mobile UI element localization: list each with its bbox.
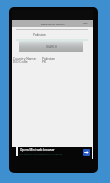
- button[interactable]: SEARCH: [19, 41, 83, 52]
- staticText: The fastest Mini browser for Android: [19, 152, 62, 155]
- staticText: ISO Code:: [13, 59, 29, 63]
- staticText: Pakistan: [42, 56, 56, 60]
- staticText: Country Name:: [13, 56, 37, 60]
- button[interactable]: Opera Mini web browser: [12, 147, 93, 159]
- button[interactable]: Install: [83, 149, 90, 156]
- staticText: Find: [83, 22, 88, 25]
- staticText: SEARCH: [46, 45, 57, 49]
- button[interactable]: Find: [83, 22, 88, 25]
- button[interactable]: Electricity by Country: [12, 20, 93, 27]
- button[interactable]: Pakistan: [16, 30, 88, 39]
- staticText: Opera Mini web browser: [20, 148, 55, 152]
- staticText: PK: [42, 59, 47, 63]
- staticText: Pakistan: [33, 33, 46, 37]
- staticText: Electricity by Country: [41, 22, 65, 25]
